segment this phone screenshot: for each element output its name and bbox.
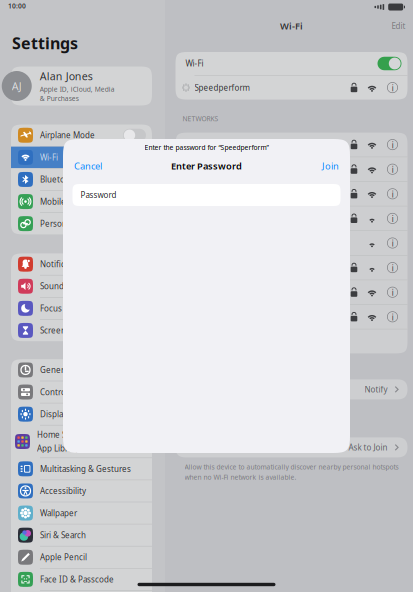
staticText: Multitasking & Gestures <box>40 463 131 474</box>
button[interactable]: General <box>11 359 152 381</box>
staticText: Focus <box>40 303 62 314</box>
button[interactable]: Sounds <box>11 275 152 297</box>
staticText: Display & Brightness <box>40 409 118 419</box>
button[interactable]: Wallpaper <box>11 502 152 524</box>
staticText: i <box>391 311 393 323</box>
staticText: Airplane Mode <box>40 130 95 140</box>
button[interactable]: Wi-Fi network <box>175 305 407 329</box>
staticText: i <box>391 286 393 298</box>
staticText: Screen Time <box>40 325 86 336</box>
staticText: Settings <box>12 32 78 54</box>
staticText: Apple Pencil <box>40 552 87 562</box>
button[interactable]: Wi-Fi network <box>175 206 407 230</box>
staticText: i <box>391 261 393 274</box>
staticText: Mobile Data <box>40 196 85 207</box>
staticText: Wi-Fi <box>40 152 58 163</box>
staticText: Wi-Fi <box>185 58 203 69</box>
button[interactable]: Wi-Fi network <box>175 256 407 280</box>
button[interactable]: Ask to Join <box>175 437 407 457</box>
button[interactable]: Notify <box>175 379 407 399</box>
staticText: i <box>391 188 393 200</box>
button[interactable]: Display & Brightness <box>11 403 152 425</box>
staticText: when no Wi-Fi network is available. <box>184 473 296 482</box>
staticText: Face ID & Passcode <box>40 574 114 585</box>
staticText: Allow this device to automatically disco… <box>184 462 398 471</box>
staticText: General <box>40 365 70 375</box>
button[interactable]: Edit <box>383 16 413 36</box>
staticText: NETWORKS <box>182 114 218 123</box>
button[interactable]: Wi-Fi network <box>175 280 407 304</box>
staticText: Sounds <box>40 281 68 291</box>
staticText: Speedperform <box>194 82 249 93</box>
button[interactable]: Speedperform <box>175 76 407 100</box>
staticText: Notify <box>364 384 387 395</box>
staticText: i <box>391 81 393 94</box>
staticText: Join <box>322 160 339 172</box>
staticText: & Purchases <box>40 94 79 103</box>
button[interactable]: Screen Time <box>11 320 152 341</box>
button[interactable]: Wi-Fi network <box>175 231 407 255</box>
staticText: Notifications <box>40 259 88 269</box>
button[interactable]: AJ <box>11 66 152 105</box>
button[interactable]: Personal Hotspot <box>11 213 152 234</box>
staticText: i <box>391 138 393 151</box>
button[interactable]: Multitasking & Gestures <box>11 458 152 480</box>
staticText: Siri & Search <box>40 530 86 540</box>
button[interactable]: Wi-Fi network <box>175 182 407 206</box>
staticText: Password <box>80 190 116 200</box>
button[interactable]: Face ID & Passcode <box>11 569 152 590</box>
button[interactable]: Join <box>314 156 350 176</box>
staticText: Wallpaper <box>40 508 77 518</box>
staticText: App Library <box>37 443 79 454</box>
staticText: Personal Hotspot <box>40 218 106 229</box>
button[interactable]: Apple Pencil <box>11 546 152 568</box>
button[interactable]: Mobile Data <box>11 191 152 212</box>
button[interactable]: Wi-Fi on <box>377 57 401 70</box>
staticText: i <box>391 212 393 225</box>
staticText: Enter Password <box>171 160 242 172</box>
staticText: Ask to Join <box>348 442 387 453</box>
staticText: AJ <box>12 79 22 93</box>
button[interactable]: Notifications <box>11 253 152 275</box>
staticText: i <box>391 163 393 175</box>
staticText: Control Centre <box>40 387 96 397</box>
staticText: Bluetooth <box>40 174 78 185</box>
button[interactable]: Home Screen & <box>11 425 152 457</box>
button[interactable]: Bluetooth <box>11 169 152 190</box>
staticText: Cancel <box>74 160 102 172</box>
staticText: Wi-Fi <box>280 20 303 32</box>
button[interactable]: Siri & Search <box>11 524 152 546</box>
staticText: Edit <box>391 21 405 31</box>
button[interactable]: Airplane Mode <box>11 124 152 146</box>
button[interactable]: Wi-Fi network <box>175 157 407 181</box>
staticText: Alan Jones <box>40 69 93 83</box>
button[interactable]: Focus <box>11 298 152 319</box>
staticText: Enter the password for “Speedperform” <box>144 143 268 152</box>
button[interactable]: Accessibility <box>11 480 152 502</box>
staticText: Home Screen & <box>37 429 96 440</box>
staticText: Apple ID, iCloud, Media <box>40 85 115 94</box>
staticText: i <box>391 237 393 249</box>
button[interactable]: Control Centre <box>11 381 152 403</box>
button[interactable]: Wi-Fi network <box>175 133 407 157</box>
staticText: Accessibility <box>40 486 86 496</box>
button[interactable]: Cancel <box>63 156 110 176</box>
staticText: 10:00 <box>8 2 26 10</box>
button[interactable]: Wi-Fi <box>11 147 152 168</box>
